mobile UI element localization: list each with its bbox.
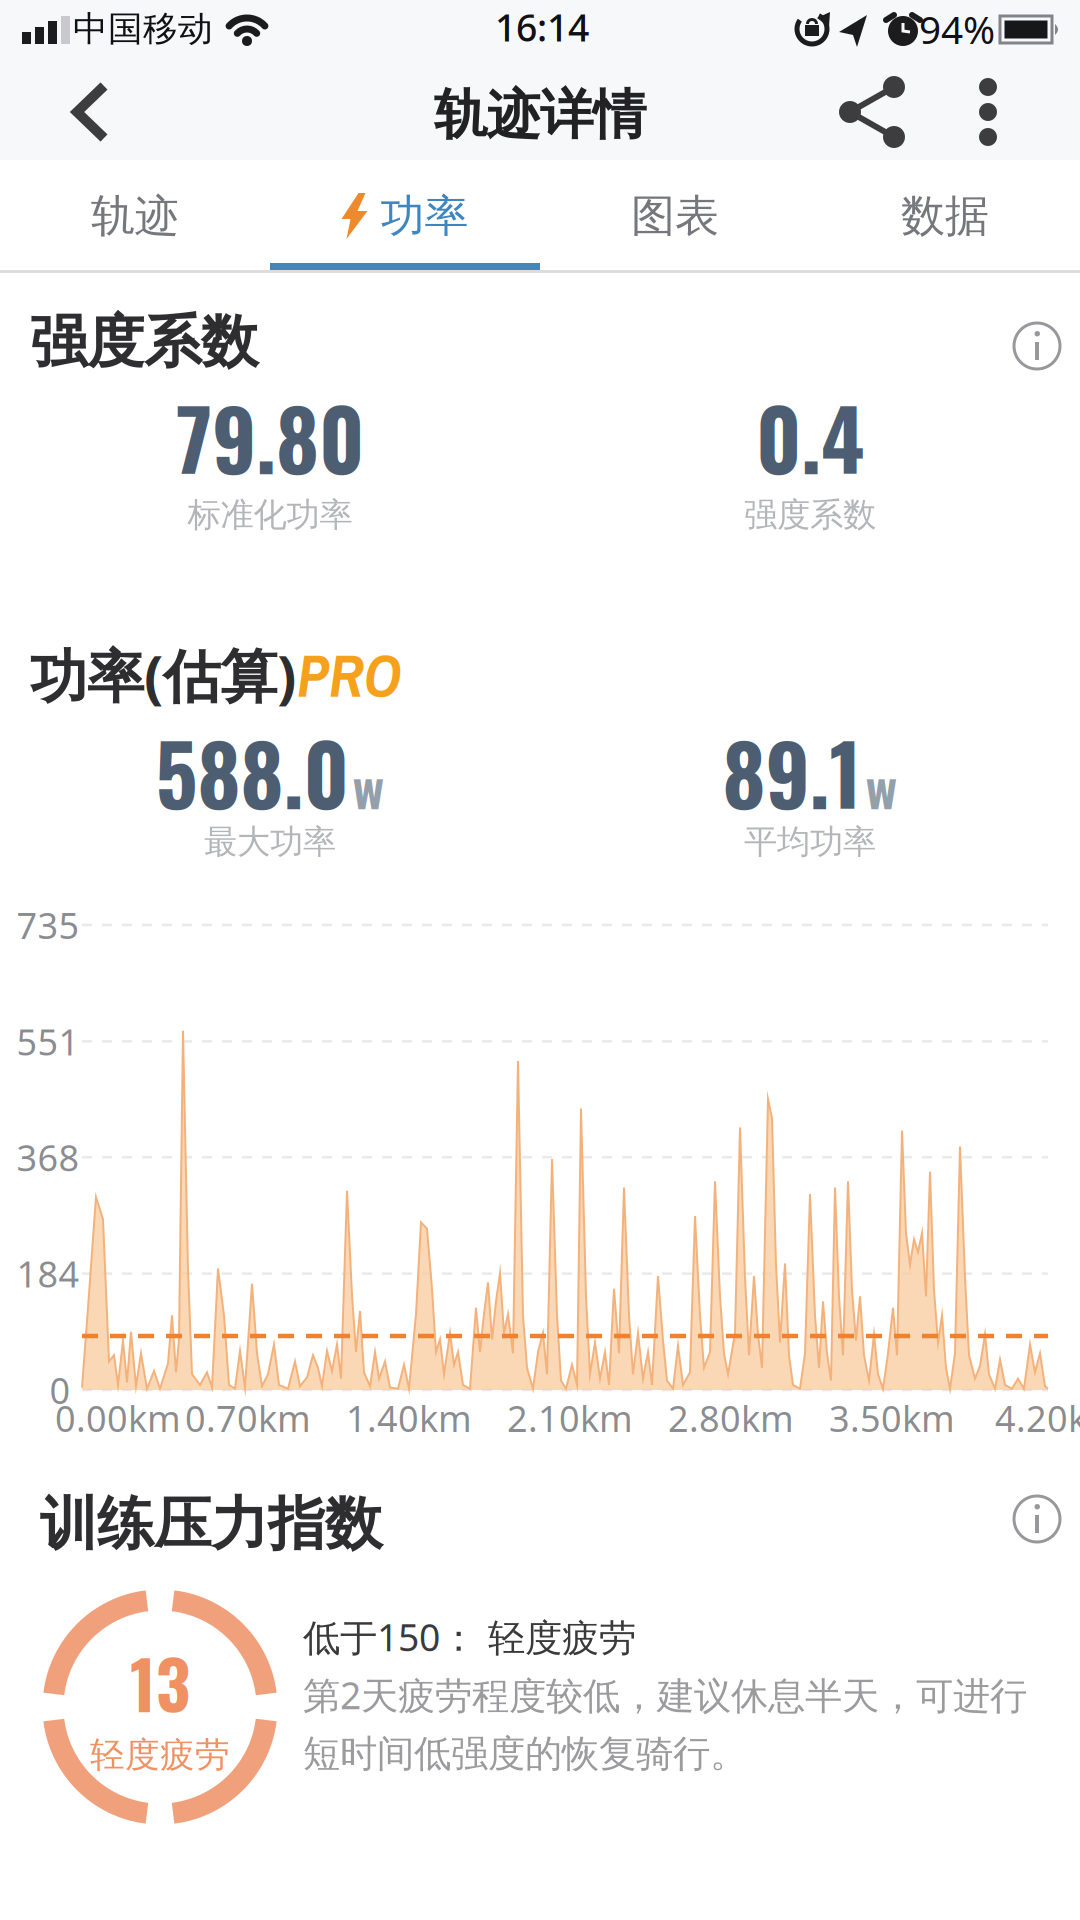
staticText: 588.0 [155, 711, 348, 833]
button[interactable]: Info [1007, 316, 1067, 376]
staticText: 平均功率 [744, 821, 876, 862]
staticText: 0.70km [185, 1394, 311, 1442]
staticText: 最大功率 [204, 821, 336, 862]
staticText: w [865, 746, 897, 825]
staticText: 79.80 [176, 376, 364, 498]
staticText: 2.10km [507, 1394, 633, 1442]
staticText: 89.1 [722, 711, 861, 833]
button[interactable]: Back [30, 62, 150, 162]
staticText: w [352, 746, 384, 825]
staticText: 16:14 [495, 2, 589, 52]
staticText: 735 [16, 901, 79, 949]
button[interactable]: 功率 [270, 164, 540, 268]
staticText: 第2天疲劳程度较低，建议休息半天，可进行 [303, 1670, 1027, 1720]
staticText: 标准化功率 [187, 494, 352, 535]
button[interactable]: 图表 [540, 164, 810, 268]
staticText: 强度系数 [30, 307, 258, 377]
button[interactable]: 数据 [810, 164, 1080, 268]
staticText: 功率 [380, 189, 468, 243]
staticText: 0.00km [55, 1394, 181, 1442]
staticText: 低于150： 轻度疲劳 [303, 1612, 636, 1662]
staticText: 轨迹 [91, 189, 179, 243]
staticText: 184 [16, 1250, 79, 1297]
staticText: 1.40km [346, 1394, 472, 1442]
staticText: 数据 [901, 189, 989, 243]
staticText: 13 [130, 1633, 190, 1731]
staticText: 图表 [631, 189, 719, 243]
staticText: 功率(估算) [30, 637, 296, 713]
staticText: 368 [16, 1133, 79, 1181]
staticText: 0.4 [756, 376, 864, 498]
staticText: PRO [297, 636, 401, 715]
staticText: 轨迹详情 [434, 82, 646, 148]
staticText: 强度系数 [744, 494, 876, 535]
button[interactable]: More [928, 62, 1048, 162]
button[interactable]: Info [1007, 1489, 1067, 1549]
staticText: 4.20km [995, 1394, 1080, 1442]
staticText: 0 [49, 1366, 70, 1414]
button[interactable]: Share [801, 62, 941, 162]
staticText: 3.50km [829, 1394, 955, 1442]
staticText: 94% [919, 3, 995, 55]
staticText: 2.80km [668, 1394, 794, 1442]
staticText: 训练压力指数 [40, 1489, 382, 1559]
staticText: 轻度疲劳 [90, 1734, 230, 1776]
staticText: 中国移动 [73, 8, 213, 50]
button[interactable]: 轨迹 [0, 164, 270, 268]
staticText: 短时间低强度的恢复骑行。 [303, 1731, 747, 1777]
staticText: 551 [16, 1017, 79, 1065]
